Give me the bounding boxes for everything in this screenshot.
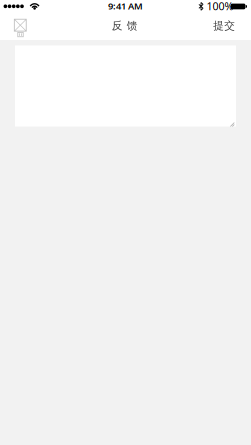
- staticText: 100%: [207, 0, 234, 13]
- staticText: 交: [224, 19, 235, 32]
- button[interactable]: 提: [202, 13, 246, 39]
- staticText: 馈: [127, 19, 138, 32]
- staticText: 反: [112, 19, 123, 32]
- staticText: 9:41 AM: [108, 0, 143, 12]
- staticText: 提: [213, 19, 224, 32]
